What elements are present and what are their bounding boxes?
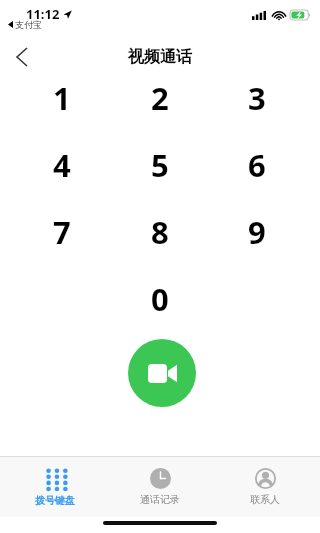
button[interactable]: 4 — [30, 141, 94, 189]
staticText: 7 — [53, 211, 71, 253]
staticText: 4 — [53, 144, 71, 186]
button[interactable]: 拨号键盘 — [5, 457, 105, 517]
staticText: 2 — [151, 77, 169, 119]
staticText: 视频通话 — [0, 47, 320, 67]
staticText: 5 — [151, 144, 169, 186]
button[interactable]: 9 — [225, 208, 289, 256]
button[interactable]: 5 — [128, 141, 192, 189]
staticText: 9 — [248, 211, 266, 253]
button[interactable]: Back — [2, 39, 42, 75]
button[interactable]: 1 — [30, 74, 94, 122]
staticText: 6 — [248, 144, 266, 186]
staticText: 1 — [53, 77, 71, 119]
button[interactable]: 0 — [128, 275, 192, 323]
button[interactable]: 联系人 — [215, 457, 315, 517]
button[interactable]: Start video call — [128, 339, 196, 407]
button[interactable]: 通话记录 — [110, 457, 210, 517]
button[interactable]: 2 — [128, 74, 192, 122]
staticText: 通话记录 — [140, 493, 180, 506]
button[interactable]: 6 — [225, 141, 289, 189]
staticText: 支付宝 — [15, 19, 42, 30]
button[interactable]: 8 — [128, 208, 192, 256]
staticText: 拨号键盘 — [35, 494, 75, 507]
button[interactable]: 7 — [30, 208, 94, 256]
staticText: 3 — [248, 77, 266, 119]
staticText: 联系人 — [250, 493, 280, 506]
staticText: 11:12 — [26, 5, 60, 23]
button[interactable]: 3 — [225, 74, 289, 122]
staticText: 0 — [151, 278, 169, 320]
staticText: 8 — [151, 211, 169, 253]
